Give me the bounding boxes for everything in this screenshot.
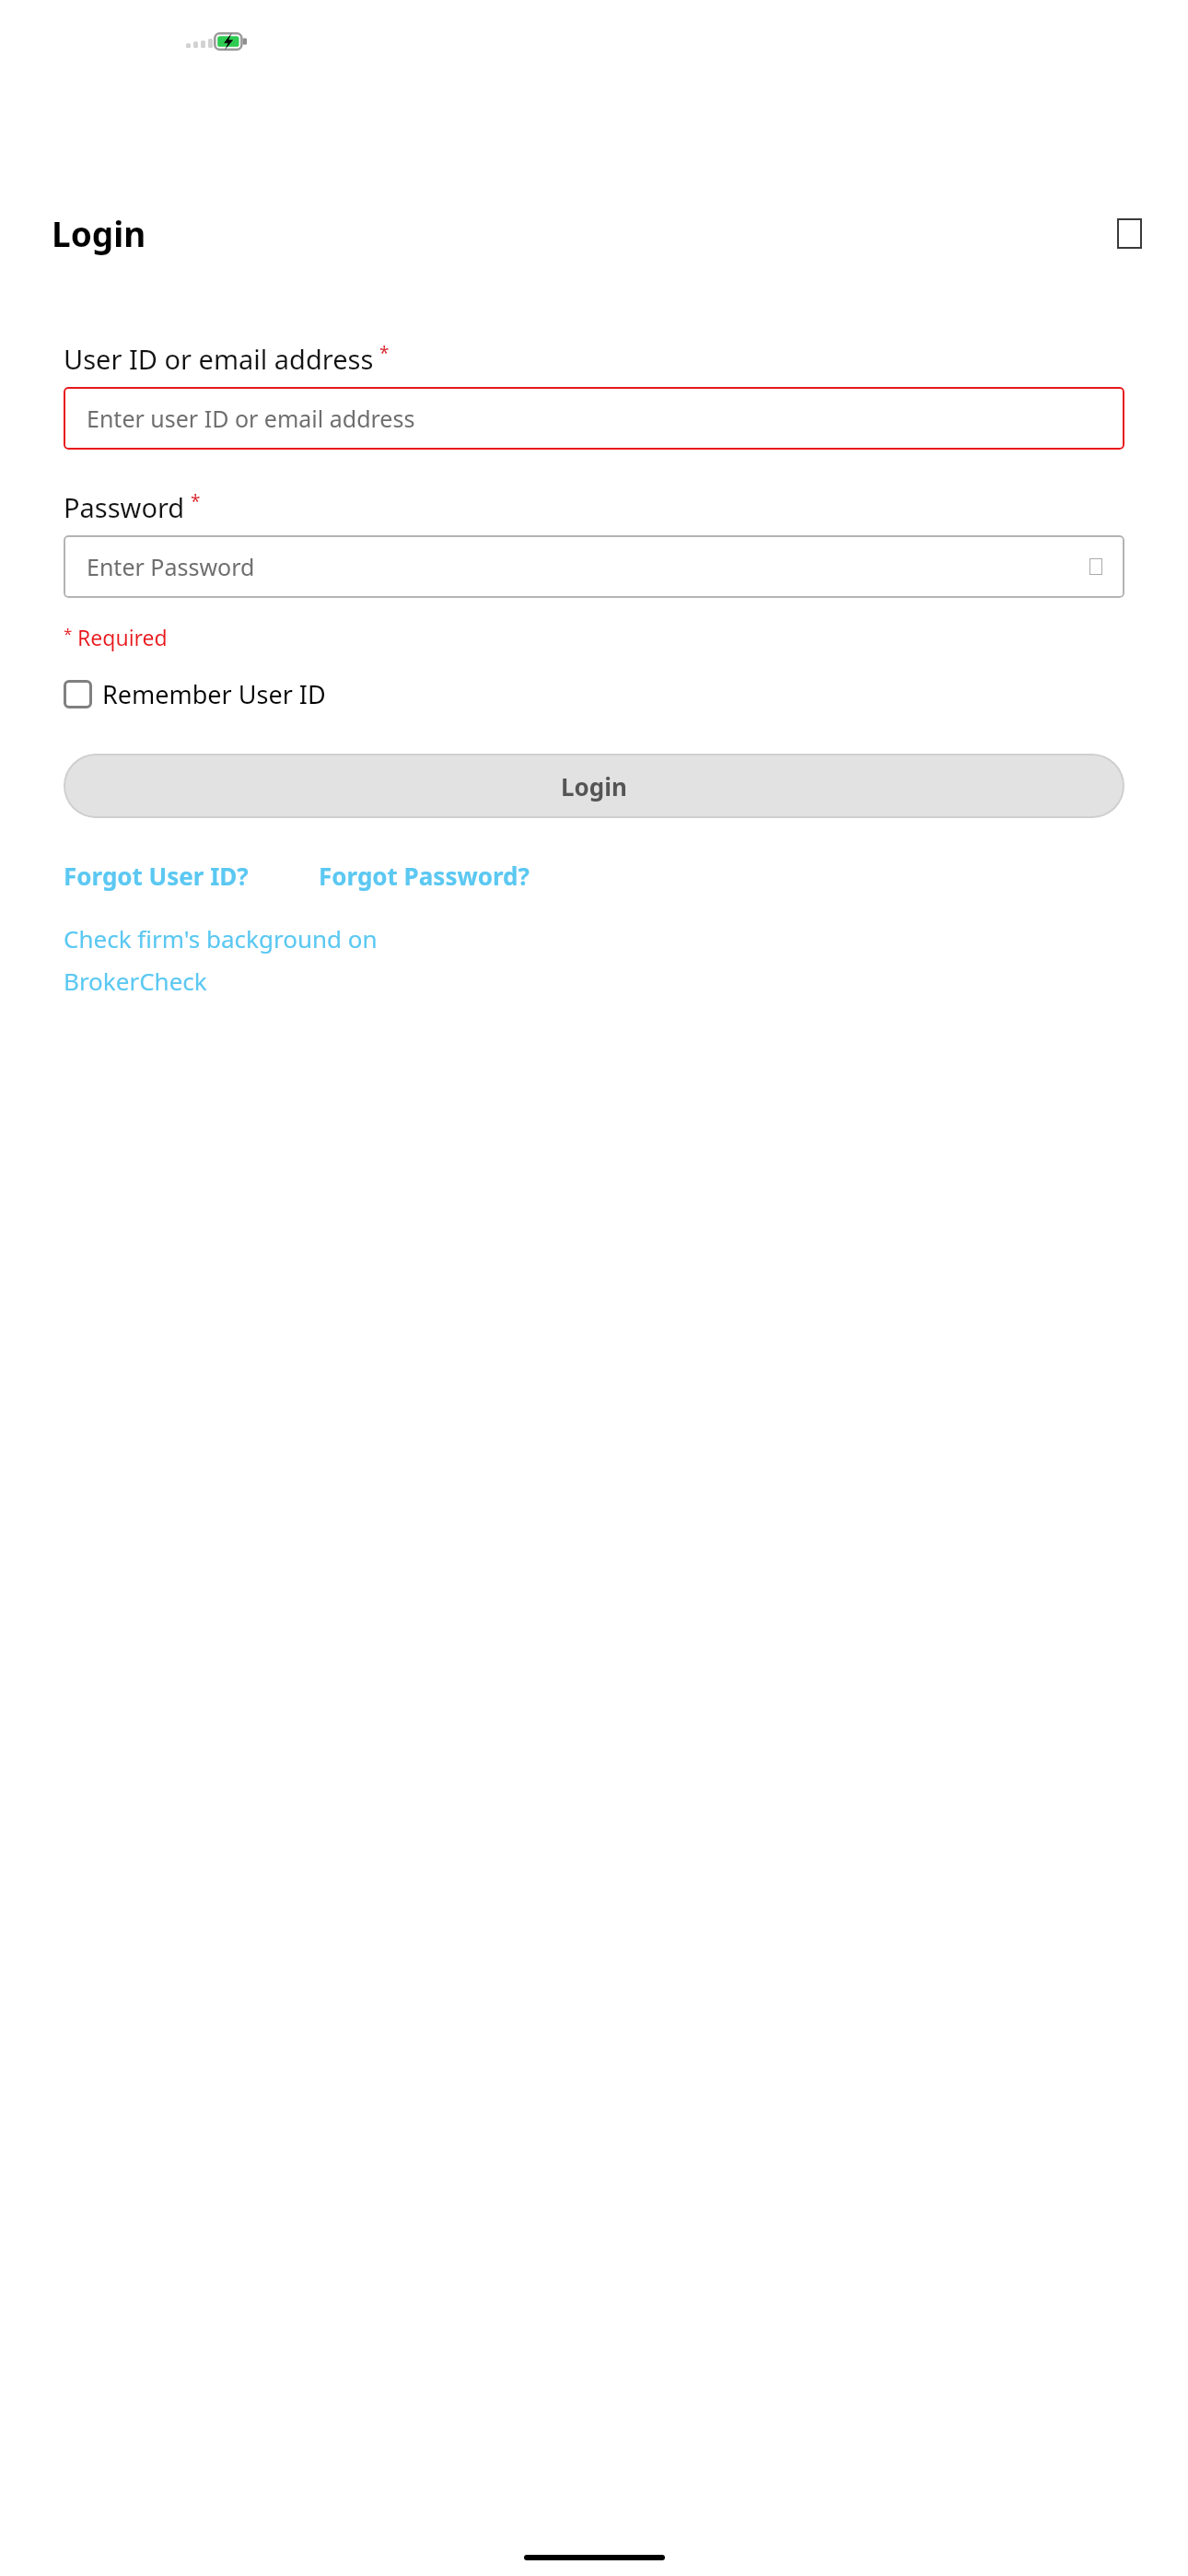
staticText: Login: [52, 210, 146, 256]
staticText: Enter Password: [87, 551, 255, 582]
staticText: Enter user ID or email address: [87, 403, 415, 434]
staticText: Required: [77, 623, 168, 651]
staticText: Check firm's background on BrokerCheck: [64, 922, 404, 998]
button[interactable]: Remember User ID: [64, 677, 326, 711]
staticText: *: [379, 341, 390, 365]
staticText: Remember User ID: [102, 677, 326, 711]
button[interactable]: Menu: [1117, 218, 1142, 249]
staticText: *: [64, 623, 73, 644]
button[interactable]: Enter Password: [64, 535, 1124, 598]
staticText: User ID or email address: [64, 341, 374, 377]
button[interactable]: Check firm's background on BrokerCheck: [64, 922, 404, 998]
staticText: Forgot Password?: [319, 860, 530, 892]
staticText: Login: [561, 770, 627, 802]
button[interactable]: Forgot User ID?: [64, 860, 249, 892]
staticText: Forgot User ID?: [64, 860, 249, 892]
button[interactable]: Login: [64, 754, 1124, 818]
staticText: Password: [64, 489, 185, 525]
button[interactable]: Enter user ID or email address: [64, 387, 1124, 450]
staticText: *: [191, 489, 201, 513]
button[interactable]: Forgot Password?: [319, 860, 530, 892]
